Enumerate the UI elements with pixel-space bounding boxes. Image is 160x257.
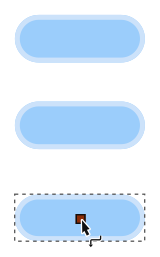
button[interactable]: Pill button <box>15 15 145 62</box>
button[interactable]: Pill button <box>15 195 145 241</box>
button[interactable]: Pill button <box>15 101 145 149</box>
